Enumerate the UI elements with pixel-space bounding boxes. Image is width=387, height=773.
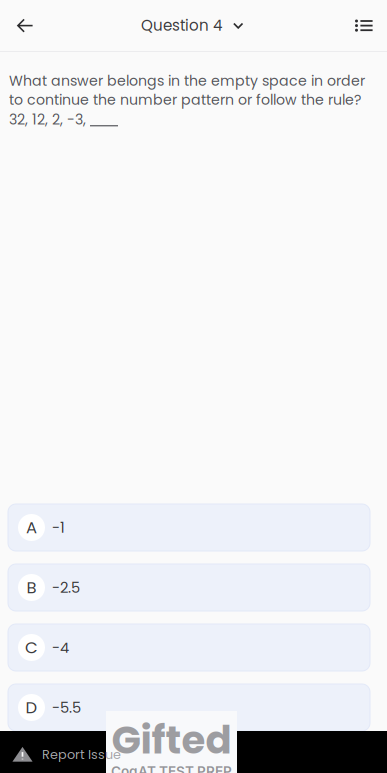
- button[interactable]: D: [8, 684, 370, 731]
- button[interactable]: All questions: [347, 8, 381, 42]
- button[interactable]: Back: [8, 8, 42, 42]
- button[interactable]: Report Issue: [0, 736, 387, 773]
- staticText: A: [26, 516, 37, 539]
- staticText: -4: [52, 637, 69, 658]
- staticText: Gifted: [111, 713, 231, 767]
- button[interactable]: Choose question: [230, 17, 246, 33]
- button[interactable]: B: [8, 564, 370, 611]
- staticText: D: [25, 696, 37, 719]
- staticText: What answer belongs in the empty space i…: [9, 71, 365, 110]
- staticText: -5.5: [52, 697, 81, 718]
- staticText: Question 4: [141, 15, 222, 36]
- staticText: B: [26, 576, 36, 599]
- staticText: -1: [52, 517, 65, 538]
- staticText: CogAT TEST PREP: [111, 763, 232, 773]
- staticText: C: [25, 636, 38, 659]
- button[interactable]: A: [8, 504, 370, 551]
- staticText: 32, 12, 2, -3,: [9, 110, 86, 129]
- staticText: -2.5: [52, 577, 80, 598]
- button[interactable]: C: [8, 624, 370, 671]
- staticText: Report Issue: [42, 745, 121, 763]
